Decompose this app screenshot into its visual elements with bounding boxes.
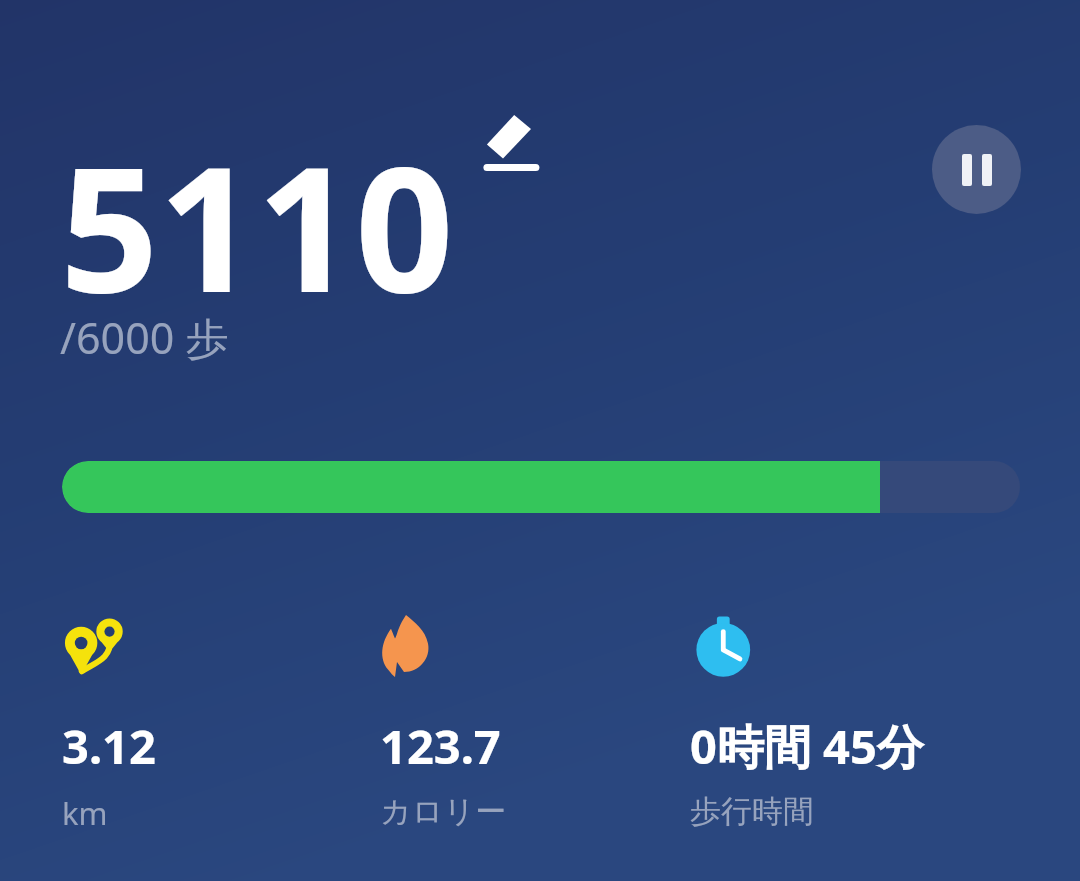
button[interactable]: Edit step goal [482,108,552,178]
staticText: 0時間 45分 [690,714,924,778]
staticText: /6000 歩 [60,308,229,367]
staticText: 歩行時間 [690,792,814,831]
button[interactable]: Calories [380,612,680,831]
other: Distance [62,612,130,680]
staticText: 3.12 [62,714,156,778]
button[interactable]: Distance [62,612,362,834]
button[interactable]: Walking time [690,612,990,831]
staticText: 123.7 [380,714,501,778]
other: Calories [380,612,448,680]
staticText: 5110 [60,108,454,342]
button[interactable]: Pause [932,125,1021,214]
staticText: km [62,792,108,834]
staticText: カロリー [380,792,507,831]
button[interactable]: Step progress [62,461,1020,513]
other: Walking time [690,612,758,680]
